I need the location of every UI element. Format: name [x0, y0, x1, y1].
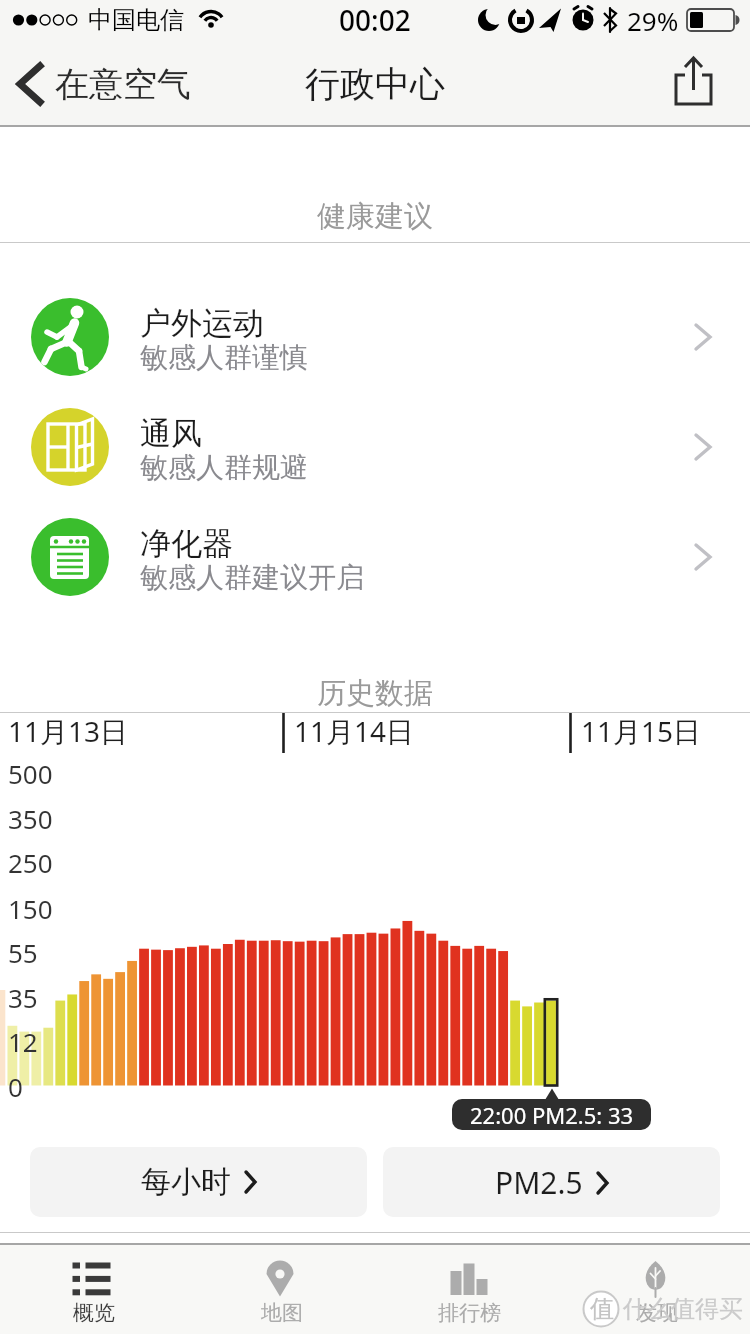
staticText: 发现 — [636, 1300, 678, 1326]
staticText: 22:00 PM2.5: 33 — [470, 1100, 634, 1130]
staticText: 什么值得买 — [623, 1294, 743, 1324]
staticText: PM2.5 — [495, 1162, 583, 1203]
staticText: 11月13日 — [8, 712, 129, 750]
staticText: 中国电信 — [88, 5, 184, 35]
button[interactable]: 通风 — [0, 392, 750, 502]
staticText: 地图 — [261, 1300, 303, 1326]
staticText: 健康建议 — [317, 198, 433, 235]
staticText: 净化器 — [140, 524, 233, 563]
button[interactable]: 每小时 — [30, 1147, 367, 1217]
staticText: 35 — [8, 980, 38, 1015]
staticText: 行政中心 — [305, 62, 445, 106]
staticText: 11月14日 — [294, 712, 415, 750]
staticText: 排行榜 — [438, 1300, 501, 1326]
button[interactable] — [8, 48, 218, 120]
staticText: 55 — [8, 935, 38, 970]
staticText: 通风 — [140, 414, 202, 453]
button[interactable]: 概览 — [0, 1244, 188, 1334]
button[interactable]: 户外运动 — [0, 282, 750, 392]
staticText: 在意空气 — [55, 63, 191, 106]
button[interactable] — [658, 50, 730, 116]
staticText: 敏感人群建议开启 — [140, 560, 364, 595]
staticText: 0 — [8, 1069, 23, 1104]
button[interactable]: PM2.5 — [383, 1147, 720, 1217]
staticText: 每小时 — [141, 1163, 231, 1201]
staticText: 12 — [8, 1024, 38, 1059]
staticText: 00:02 — [339, 1, 411, 39]
staticText: 350 — [8, 801, 53, 836]
staticText: 29% — [627, 3, 679, 38]
button[interactable]: 地图 — [188, 1244, 376, 1334]
staticText: 户外运动 — [140, 304, 264, 343]
staticText: 150 — [8, 891, 53, 926]
staticText: 敏感人群规避 — [140, 450, 308, 485]
staticText: 值 — [590, 1294, 614, 1324]
staticText: 敏感人群谨慎 — [140, 340, 308, 375]
button[interactable]: 净化器 — [0, 502, 750, 612]
staticText: 历史数据 — [317, 675, 433, 712]
staticText: 500 — [8, 756, 53, 791]
staticText: 概览 — [73, 1300, 115, 1326]
staticText: 250 — [8, 845, 53, 880]
button[interactable]: 排行榜 — [375, 1244, 563, 1334]
staticText: 11月15日 — [581, 712, 702, 750]
button[interactable]: 发现 — [563, 1244, 750, 1334]
